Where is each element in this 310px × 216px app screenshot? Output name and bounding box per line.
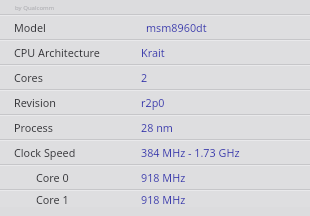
staticText: Model <box>14 20 46 35</box>
button[interactable]: Clock Speed <box>0 141 310 164</box>
staticText: Clock Speed <box>14 145 76 160</box>
staticText: 2 <box>141 70 148 85</box>
button[interactable]: Cores <box>0 66 310 89</box>
staticText: 918 MHz <box>141 170 186 185</box>
staticText: Core 1 <box>36 192 69 207</box>
staticText: 384 MHz - 1.73 GHz <box>141 145 240 160</box>
staticText: CPU Architecture <box>14 45 100 60</box>
staticText: Krait <box>141 45 165 60</box>
button[interactable]: Process <box>0 116 310 139</box>
staticText: Core 0 <box>36 170 69 185</box>
button[interactable]: by Qualcomm <box>0 0 310 14</box>
staticText: 918 MHz <box>141 192 186 207</box>
staticText: 28 nm <box>141 120 173 135</box>
button[interactable]: CPU Architecture <box>0 41 310 64</box>
staticText: by Qualcomm <box>15 4 55 12</box>
button[interactable]: Core 1 <box>0 191 310 207</box>
button[interactable]: Model <box>0 16 310 39</box>
button[interactable]: Core 0 <box>0 166 310 189</box>
staticText: Revision <box>14 95 57 110</box>
staticText: Cores <box>14 70 43 85</box>
staticText: Process <box>14 120 53 135</box>
staticText: r2p0 <box>141 95 165 110</box>
button[interactable]: Revision <box>0 91 310 114</box>
staticText: msm8960dt <box>146 20 207 35</box>
